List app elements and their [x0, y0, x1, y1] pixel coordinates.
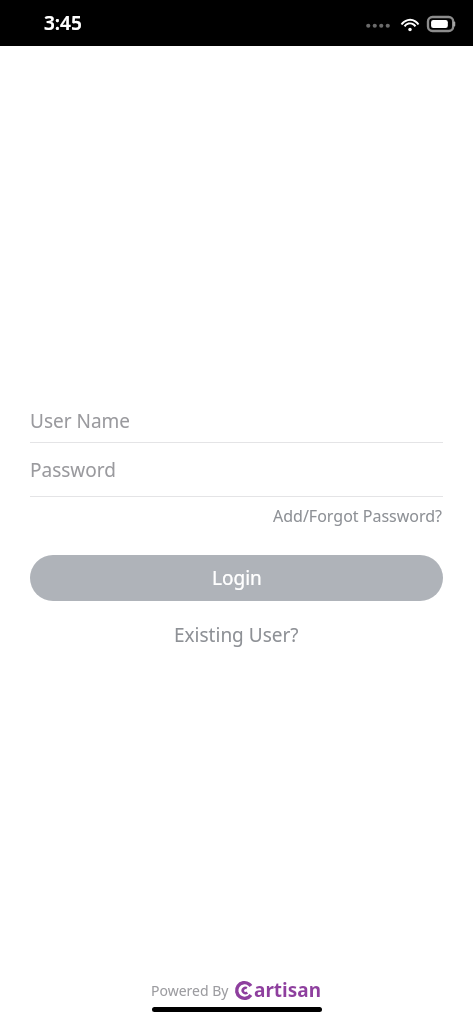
- staticText: artisan: [254, 977, 322, 1003]
- staticText: 3:45: [44, 10, 82, 36]
- staticText: Existing User?: [174, 622, 299, 648]
- button[interactable]: Password: [30, 443, 443, 496]
- staticText: User Name: [30, 408, 131, 434]
- staticText: Powered By: [151, 981, 229, 1000]
- staticText: Login: [212, 565, 262, 591]
- button[interactable]: Add/Forgot Password?: [273, 503, 443, 529]
- button[interactable]: User Name: [30, 399, 443, 442]
- staticText: Password: [30, 457, 116, 483]
- button[interactable]: Login: [30, 555, 443, 601]
- staticText: Add/Forgot Password?: [273, 505, 443, 527]
- button[interactable]: Existing User?: [166, 619, 307, 651]
